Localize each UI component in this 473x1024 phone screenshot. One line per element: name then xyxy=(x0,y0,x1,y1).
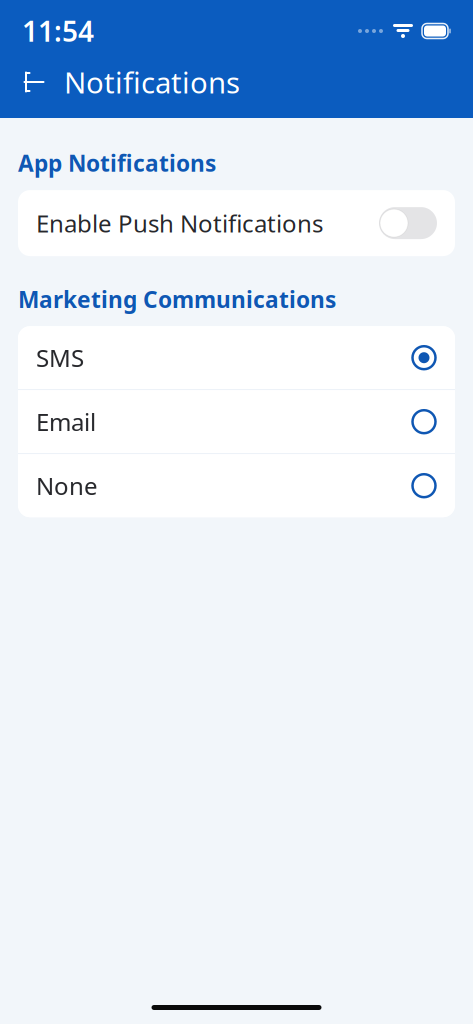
button[interactable]: Email xyxy=(18,390,455,453)
button[interactable]: SMS xyxy=(18,326,455,389)
staticText: Enable Push Notifications xyxy=(36,207,323,239)
staticText: App Notifications xyxy=(18,148,216,178)
staticText: SMS xyxy=(36,342,84,374)
staticText: Marketing Communications xyxy=(18,284,336,314)
staticText: 11:54 xyxy=(22,12,94,50)
button[interactable]: Back xyxy=(12,60,56,104)
staticText: Notifications xyxy=(64,62,240,101)
button[interactable]: None xyxy=(18,454,455,517)
staticText: Email xyxy=(36,406,96,438)
staticText: None xyxy=(36,470,98,502)
button[interactable]: Enable Push Notifications xyxy=(18,190,455,256)
